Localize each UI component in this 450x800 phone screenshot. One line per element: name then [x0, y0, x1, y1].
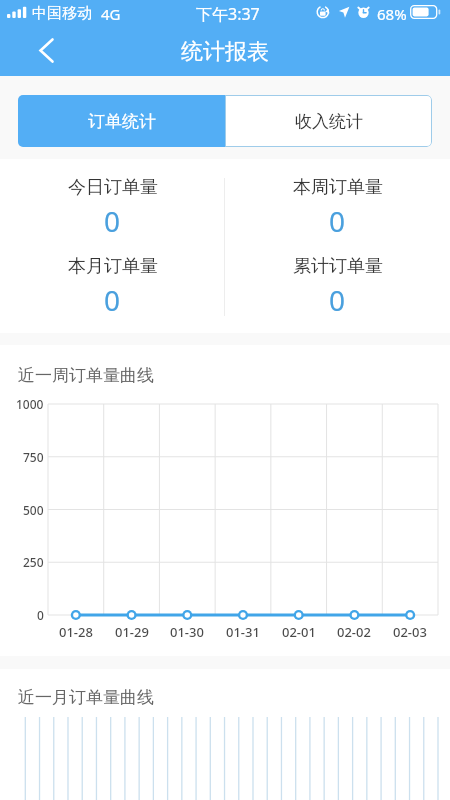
- button[interactable]: 本月订单量: [0, 251, 225, 329]
- staticText: 01-30: [170, 623, 204, 641]
- staticText: 68%: [377, 4, 407, 24]
- button[interactable]: 今日订单量: [0, 172, 225, 250]
- staticText: 中国移动: [32, 4, 92, 23]
- staticText: 0: [37, 607, 44, 623]
- button[interactable]: 收入统计: [225, 95, 432, 147]
- staticText: 01-28: [59, 623, 93, 641]
- staticText: 本月订单量: [68, 255, 158, 278]
- staticText: 今日订单量: [68, 176, 158, 199]
- staticText: 近一月订单量曲线: [18, 687, 154, 708]
- staticText: 02-03: [393, 623, 427, 641]
- staticText: 0: [329, 202, 346, 240]
- button[interactable]: 本周订单量: [225, 172, 450, 250]
- staticText: 1000: [16, 396, 44, 412]
- staticText: 下午3:37: [196, 3, 260, 25]
- staticText: 0: [329, 281, 346, 319]
- staticText: 01-29: [115, 623, 149, 641]
- button[interactable]: 累计订单量: [225, 251, 450, 329]
- staticText: 累计订单量: [293, 255, 383, 278]
- staticText: 统计报表: [181, 38, 269, 66]
- staticText: 近一周订单量曲线: [18, 365, 154, 386]
- staticText: 本周订单量: [293, 176, 383, 199]
- staticText: 01-31: [226, 623, 260, 641]
- staticText: 750: [23, 449, 44, 465]
- staticText: 订单统计: [88, 111, 156, 132]
- button[interactable]: 订单统计: [18, 95, 225, 147]
- staticText: 250: [23, 554, 44, 570]
- staticText: 02-02: [337, 623, 371, 641]
- staticText: 收入统计: [295, 111, 363, 132]
- staticText: 0: [104, 281, 121, 319]
- button[interactable]: Back: [22, 24, 70, 76]
- staticText: 02-01: [282, 623, 316, 641]
- staticText: 500: [23, 502, 44, 518]
- staticText: 4G: [101, 4, 121, 24]
- staticText: 0: [104, 202, 121, 240]
